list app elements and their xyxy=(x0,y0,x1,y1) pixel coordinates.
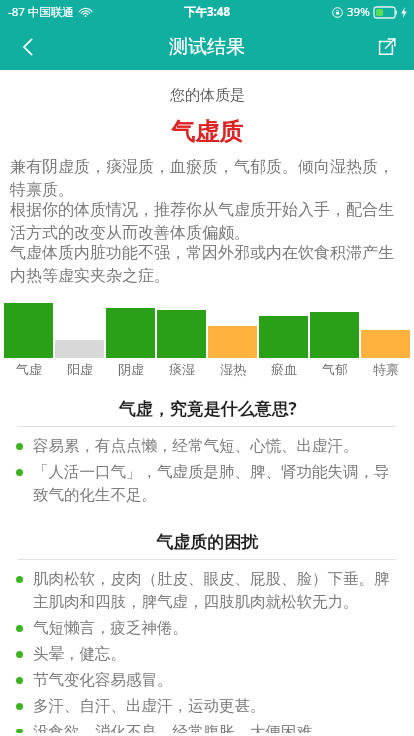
staticText: 气短懒言，疲乏神倦。 xyxy=(33,618,402,638)
button[interactable]: 气短懒言，疲乏神倦。 xyxy=(16,615,402,641)
staticText: 瘀血 xyxy=(271,361,297,377)
staticText: 痰湿 xyxy=(169,361,195,377)
button[interactable]: 头晕，健忘。 xyxy=(16,641,402,667)
staticText: 湿热 xyxy=(220,361,246,377)
staticText: 测试结果 xyxy=(169,35,245,59)
button[interactable]: 肌肉松软，皮肉（肚皮、眼皮、屁股、脸）下垂。脾主肌肉和四肢，脾气虚，四肢肌肉就松… xyxy=(16,566,402,615)
staticText: 多汗、自汗、出虚汗，运动更甚。 xyxy=(33,696,402,716)
staticText: -87 中国联通 xyxy=(8,4,74,20)
staticText: 阳虚 xyxy=(67,361,93,377)
staticText: 阴虚 xyxy=(118,361,144,377)
staticText: 「人活一口气」，气虚质是肺、脾、肾功能失调，导致气的化生不足。 xyxy=(33,462,402,505)
button[interactable]: 多汗、自汗、出虚汗，运动更甚。 xyxy=(16,693,402,719)
button[interactable]: 没食欲，消化不良，经常腹胀，大便困难。 xyxy=(16,719,402,736)
button[interactable]: Back xyxy=(0,24,56,70)
staticText: 肌肉松软，皮肉（肚皮、眼皮、屁股、脸）下垂。脾主肌肉和四肢，脾气虚，四肢肌肉就松… xyxy=(33,569,402,612)
staticText: 根据你的体质情况，推荐你从气虚质开始入手，配合生活方式的改变从而改善体质偏颇。 xyxy=(10,200,404,243)
staticText: 没食欲，消化不良，经常腹胀，大便困难。 xyxy=(33,722,402,733)
staticText: 39% xyxy=(347,4,370,20)
button[interactable]: 容易累，有点点懒，经常气短、心慌、出虚汗。 xyxy=(16,433,402,459)
staticText: 气虚质 xyxy=(171,117,243,147)
staticText: 头晕，健忘。 xyxy=(33,644,402,664)
staticText: 气虚 xyxy=(16,361,42,377)
button[interactable]: Share xyxy=(358,24,414,70)
staticText: 气虚质的困扰 xyxy=(156,532,258,553)
staticText: 节气变化容易感冒。 xyxy=(33,670,402,690)
button[interactable]: 节气变化容易感冒。 xyxy=(16,667,402,693)
button[interactable]: 「人活一口气」，气虚质是肺、脾、肾功能失调，导致气的化生不足。 xyxy=(16,459,402,508)
staticText: 容易累，有点点懒，经常气短、心慌、出虚汗。 xyxy=(33,436,402,456)
staticText: 气虚体质内脏功能不强，常因外邪或内在饮食积滞产生内热等虚实夹杂之症。 xyxy=(10,243,404,286)
staticText: 下午3:48 xyxy=(184,4,230,20)
staticText: 您的体质是 xyxy=(170,86,245,105)
staticText: 兼有阴虚质，痰湿质，血瘀质，气郁质。倾向湿热质，特禀质。 xyxy=(10,157,404,200)
staticText: 特禀 xyxy=(373,361,399,377)
staticText: 气郁 xyxy=(322,361,348,377)
staticText: 气虚，究竟是什么意思? xyxy=(118,397,297,420)
